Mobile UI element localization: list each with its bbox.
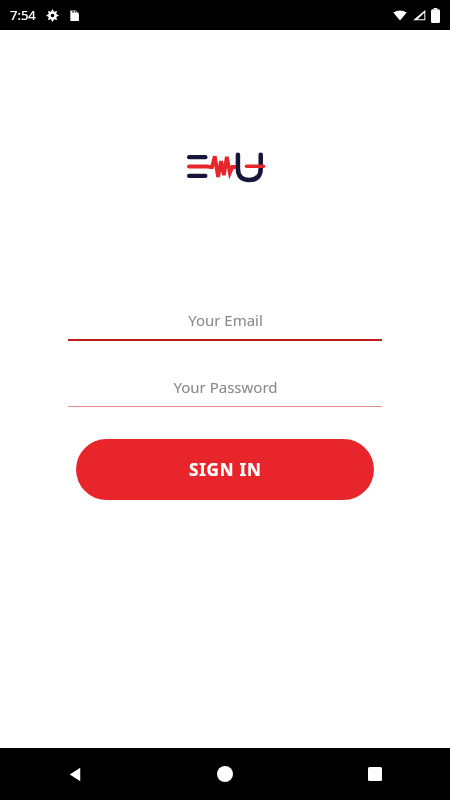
button[interactable]: Back [0,748,150,800]
staticText: 7:54 [10,6,36,24]
other: EMU logo [187,149,263,185]
button[interactable]: SIGN IN [76,439,374,500]
staticText: SIGN IN [189,458,262,481]
staticText: Your Password [173,377,278,397]
staticText: Your Email [188,310,263,330]
button[interactable]: Your Password [68,368,382,407]
button[interactable]: Recent apps [300,748,450,800]
button[interactable]: Your Email [68,301,382,341]
button[interactable]: Home [150,748,300,800]
